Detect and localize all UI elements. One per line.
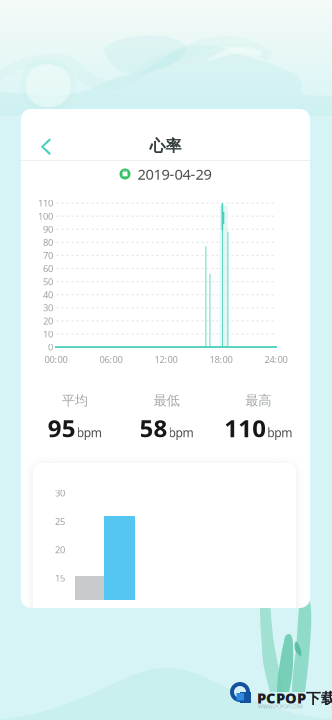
staticText: 平均 [62, 392, 88, 409]
staticText: 最低 [153, 392, 179, 409]
staticText: 20 [43, 315, 53, 327]
staticText: 90 [43, 223, 53, 235]
staticText: 30 [43, 301, 53, 314]
staticText: 0 [48, 341, 53, 353]
staticText: 20 [55, 543, 65, 556]
staticText: PCPOP下载 [257, 688, 332, 708]
staticText: 58 [139, 412, 167, 444]
staticText: 50 [43, 275, 53, 288]
staticText: 06:00 [99, 353, 122, 366]
staticText: 25 [55, 515, 65, 527]
staticText: 30 [55, 487, 65, 499]
staticText: 18:00 [209, 353, 232, 366]
staticText: bpm [168, 425, 193, 441]
staticText: 100 [38, 210, 53, 222]
staticText: 110 [224, 412, 266, 444]
staticText: 00:00 [44, 353, 67, 366]
staticText: 70 [43, 249, 53, 262]
staticText: 2019-04-29 [137, 164, 211, 184]
staticText: bpm [267, 425, 292, 441]
staticText: 10 [43, 328, 53, 340]
staticText: 95 [48, 412, 76, 444]
staticText: 40 [43, 288, 53, 301]
staticText: 最高 [245, 392, 271, 409]
staticText: 24:00 [264, 353, 287, 366]
staticText: 110 [38, 197, 53, 209]
staticText: WWW.PCPOP.COM [258, 703, 303, 710]
staticText: 15 [55, 572, 65, 584]
staticText: 12:00 [154, 353, 177, 366]
staticText: 80 [43, 236, 53, 248]
staticText: 心率 [149, 136, 181, 156]
staticText: bpm [77, 425, 102, 441]
button[interactable]: Back [21, 124, 71, 170]
staticText: 60 [43, 262, 53, 275]
